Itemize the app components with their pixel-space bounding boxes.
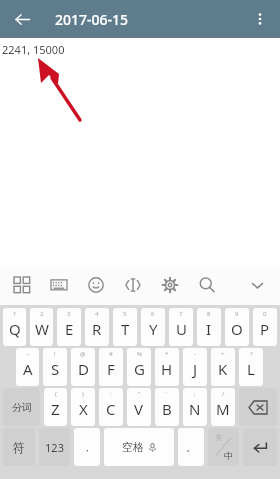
button[interactable]: / [211,388,235,426]
staticText: F [107,359,115,379]
button[interactable]: 2 [30,308,53,346]
staticText: 9 [235,310,239,318]
staticText: 2241, 15000 [2,42,65,57]
staticText: E [65,319,74,339]
button[interactable]: 6 [141,308,165,346]
staticText: ; [194,390,196,398]
staticText: Q [9,319,21,339]
button[interactable]: 空格 [104,428,174,466]
button[interactable]: Text cursor [121,273,145,297]
staticText: W [35,319,49,339]
button[interactable]: + [211,348,235,386]
button[interactable]: @ [71,348,95,386]
staticText: ( [55,390,57,398]
staticText: V [134,399,144,419]
button[interactable]: 8 [197,308,221,346]
staticText: 中 [224,450,233,461]
button[interactable]: Settings [158,273,182,297]
staticText: " [138,390,141,398]
staticText: ! [54,350,56,358]
staticText: 0 [263,310,267,318]
button[interactable]: * [155,348,179,386]
button[interactable]: : [99,388,123,426]
button[interactable]: ， [74,428,100,466]
button[interactable]: 5 [113,308,137,346]
button[interactable]: # [99,348,123,386]
button[interactable]: Back [6,3,38,35]
button[interactable]: Keyboard layout [47,273,71,297]
staticText: 123 [45,440,64,455]
staticText: 4 [95,310,99,318]
staticText: / [222,390,225,398]
button[interactable]: 英 [208,428,239,466]
button[interactable]: 123 [39,428,70,466]
staticText: K [218,359,228,379]
staticText: H [161,359,173,379]
button[interactable]: ) [71,388,95,426]
staticText: * [165,350,169,358]
staticText: @ [80,350,86,358]
staticText: 分词 [12,401,32,414]
button[interactable]: 符 [3,428,35,466]
staticText: U [176,319,187,339]
staticText: 。 [186,441,196,454]
button[interactable]: ! [43,348,67,386]
staticText: P [260,319,270,339]
button[interactable]: ' [155,388,179,426]
staticText: D [78,359,89,379]
button[interactable]: 1 [3,308,26,346]
staticText: L [247,359,255,379]
button[interactable]: ( [44,388,67,426]
button[interactable]: 分词 [3,388,40,426]
button[interactable]: Hide keyboard [242,270,272,300]
staticText: 空格 [122,440,144,454]
button[interactable]: Search [195,273,219,297]
button[interactable]: 3 [57,308,81,346]
button[interactable]: ; [183,388,207,426]
staticText: Z [51,399,60,419]
staticText: O [231,319,243,339]
button[interactable]: - [183,348,207,386]
button[interactable]: 7 [169,308,193,346]
button[interactable]: % [127,348,151,386]
button[interactable]: ? [239,348,263,386]
staticText: N [189,399,201,419]
staticText: Y [149,319,158,339]
staticText: C [106,399,116,419]
staticText: R [92,319,102,339]
staticText: J [193,359,198,379]
staticText: I [206,319,212,339]
button[interactable]: Symbols [10,273,34,297]
button[interactable]: 4 [85,308,109,346]
staticText: 符 [13,440,25,455]
button[interactable]: Emoji [84,273,108,297]
staticText: - [194,350,196,358]
staticText: 1 [13,310,17,318]
staticText: B [162,399,172,419]
staticText: X [79,399,88,419]
staticText: 英 [215,433,222,442]
button[interactable]: " [127,388,151,426]
staticText: A [23,359,33,379]
staticText: 2017-06-15 [55,10,129,29]
button[interactable]: Backspace [239,388,277,426]
button[interactable]: 。 [178,428,204,466]
staticText: 7 [179,310,183,318]
staticText: 8 [207,310,211,318]
button[interactable]: More options [244,3,276,35]
staticText: ， [82,441,92,454]
staticText: G [134,359,145,379]
staticText: ? [250,350,253,358]
staticText: 5 [123,310,127,318]
staticText: ~ [26,350,30,358]
staticText: # [109,350,113,358]
button[interactable]: Enter [243,428,277,466]
staticText: 2 [40,310,44,318]
button[interactable]: ~ [16,348,39,386]
staticText: + [221,350,225,358]
button[interactable]: 9 [225,308,249,346]
button[interactable]: 0 [253,308,277,346]
staticText: ) [82,390,84,398]
staticText: M [216,399,230,419]
staticText: 6 [151,310,155,318]
